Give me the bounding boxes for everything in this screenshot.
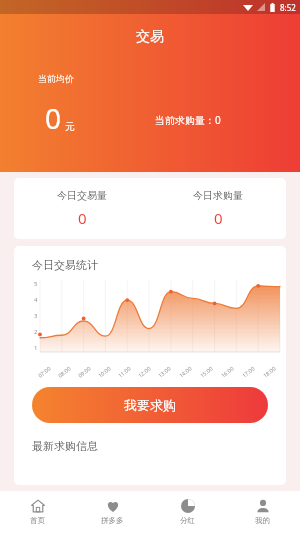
- staticText: 0: [45, 99, 62, 137]
- staticText: 13:00: [156, 364, 172, 379]
- staticText: 4: [34, 296, 38, 304]
- staticText: 今日求购量: [193, 189, 243, 202]
- staticText: 今日交易统计: [32, 258, 98, 272]
- staticText: 1: [34, 344, 38, 352]
- staticText: 0: [214, 208, 223, 228]
- staticText: 12:00: [136, 364, 152, 379]
- button[interactable]: 分红: [150, 491, 225, 533]
- staticText: 17:00: [240, 364, 256, 379]
- staticText: 09:00: [76, 364, 92, 379]
- staticText: 0: [78, 208, 87, 228]
- staticText: 当前求购量：0: [155, 113, 221, 127]
- button[interactable]: 拼多多: [75, 491, 150, 533]
- staticText: 2: [34, 328, 38, 336]
- staticText: 当前均价: [38, 73, 74, 84]
- staticText: 08:00: [56, 364, 72, 379]
- button[interactable]: 今日求购量: [150, 178, 286, 239]
- staticText: 交易: [136, 28, 164, 46]
- button[interactable]: 今日交易量: [14, 178, 286, 239]
- staticText: 16:00: [219, 364, 235, 379]
- staticText: 14:00: [177, 364, 193, 379]
- staticText: 10:00: [96, 364, 112, 379]
- staticText: 11:00: [116, 364, 132, 379]
- button[interactable]: 今日交易量: [14, 178, 150, 239]
- staticText: 5: [34, 280, 38, 288]
- button[interactable]: 首页: [0, 491, 75, 533]
- staticText: 我的: [255, 516, 270, 525]
- staticText: 拼多多: [101, 516, 124, 525]
- staticText: 首页: [30, 516, 45, 525]
- button[interactable]: 我的: [225, 491, 300, 533]
- staticText: 18:00: [261, 364, 277, 379]
- staticText: 分红: [180, 516, 195, 525]
- staticText: 15:00: [198, 364, 214, 379]
- staticText: 元: [65, 120, 75, 133]
- staticText: 今日交易量: [57, 189, 107, 202]
- staticText: 07:00: [36, 364, 52, 379]
- staticText: 我要求购: [124, 397, 176, 413]
- staticText: 最新求购信息: [32, 439, 98, 453]
- staticText: 3: [34, 312, 38, 320]
- button[interactable]: 我要求购: [32, 387, 268, 423]
- staticText: 8:52: [280, 2, 296, 13]
